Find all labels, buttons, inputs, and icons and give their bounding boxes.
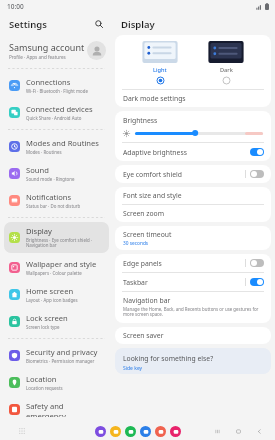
staticText: Font size and style (123, 191, 182, 200)
button[interactable]: Display (4, 222, 109, 253)
button[interactable]: Adaptive brightness (115, 143, 271, 161)
button[interactable]: Sound (4, 161, 109, 186)
staticText: Location (26, 374, 57, 384)
staticText: Profile · Apps and features (9, 54, 66, 60)
other: Off (250, 259, 264, 267)
staticText: Display (121, 18, 155, 31)
staticText: 10:00 (7, 2, 24, 11)
staticText: Biometrics · Permission manager (26, 358, 95, 364)
staticText: Sound mode · Ringtone (26, 176, 75, 182)
staticText: Modes · Routines (26, 149, 62, 155)
staticText: Eye comfort shield (123, 170, 245, 179)
button[interactable]: Eye comfort shield (115, 165, 271, 183)
button[interactable]: Connections (4, 73, 109, 98)
staticText: Connected devices (26, 104, 93, 114)
staticText: Manage the Home, Back, and Recents butto… (123, 306, 263, 318)
staticText: Safety and emergency (26, 401, 105, 417)
button[interactable]: Samsung account (0, 35, 113, 65)
staticText: Dark (220, 66, 233, 74)
staticText: Status bar · Do not disturb (26, 203, 81, 209)
button[interactable]: home (232, 425, 244, 437)
staticText: Settings (9, 18, 47, 31)
button[interactable]: Dark theme (222, 76, 231, 85)
staticText: Layout · App icon badges (26, 297, 78, 303)
button[interactable]: App e (155, 426, 166, 437)
staticText: Screen saver (123, 331, 164, 340)
button[interactable]: App c (125, 426, 136, 437)
staticText: Screen timeout (123, 230, 172, 239)
button[interactable]: recents (211, 425, 223, 437)
staticText: Wi-Fi · Bluetooth · Flight mode (26, 88, 88, 94)
staticText: 30 seconds (123, 240, 149, 247)
button[interactable]: Security and privacy (4, 343, 109, 368)
staticText: Location requests (26, 385, 63, 391)
staticText: Lock screen (26, 313, 68, 323)
button[interactable]: Safety and emergency (4, 397, 109, 421)
button[interactable]: Location (4, 370, 109, 395)
other: On (250, 278, 264, 286)
button[interactable]: App a (95, 426, 106, 437)
staticText: Navigation bar (123, 296, 171, 305)
staticText: Quick Share · Android Auto (26, 115, 82, 121)
button[interactable]: Edge panels (115, 254, 271, 272)
staticText: Samsung account (9, 41, 85, 53)
staticText: Notifications (26, 192, 72, 202)
button[interactable]: Dark mode settings (115, 90, 271, 107)
staticText: Light (153, 66, 167, 74)
button[interactable]: Screen zoom (115, 205, 271, 222)
staticText: Brightness (123, 116, 158, 125)
other: On (250, 148, 264, 156)
staticText: Dark mode settings (123, 94, 186, 103)
button[interactable]: Light theme (156, 76, 165, 85)
staticText: Looking for something else? (123, 354, 214, 363)
button[interactable]: Search (92, 17, 106, 31)
staticText: Screen zoom (123, 209, 165, 218)
staticText: Connections (26, 77, 71, 87)
button[interactable]: App f (170, 426, 181, 437)
button[interactable]: Font size and style (115, 187, 271, 204)
other: Off (250, 170, 264, 178)
button[interactable]: Modes and Routines (4, 134, 109, 159)
staticText: Wallpapers · Colour palette (26, 270, 82, 276)
staticText: Screen lock type (26, 324, 60, 330)
button[interactable]: App d (140, 426, 151, 437)
staticText: Taskbar (123, 278, 245, 287)
staticText: Display (26, 226, 52, 236)
button[interactable]: Looking for something else? (115, 348, 271, 374)
button[interactable]: Screen timeout (115, 226, 271, 250)
staticText: Side key (123, 365, 143, 372)
button[interactable]: Wallpaper and style (4, 255, 109, 280)
button[interactable]: Connected devices (4, 100, 109, 125)
button[interactable]: Notifications (4, 188, 109, 213)
button[interactable]: Home screen (4, 282, 109, 307)
staticText: Edge panels (123, 259, 245, 268)
button[interactable]: Screen saver (115, 327, 271, 344)
staticText: Home screen (26, 286, 74, 296)
button[interactable]: Navigation bar (115, 292, 271, 323)
staticText: Brightness · Eye comfort shield · Naviga… (26, 237, 105, 249)
button[interactable]: Taskbar (115, 273, 271, 291)
staticText: Modes and Routines (26, 138, 99, 148)
staticText: Security and privacy (26, 347, 98, 357)
button[interactable]: App b (110, 426, 121, 437)
staticText: Sound (26, 165, 49, 175)
button[interactable]: Lock screen (4, 309, 109, 334)
button[interactable]: back (253, 425, 265, 437)
staticText: Adaptive brightness (123, 148, 250, 157)
staticText: Wallpaper and style (26, 259, 97, 269)
button[interactable]: All apps (16, 425, 28, 437)
